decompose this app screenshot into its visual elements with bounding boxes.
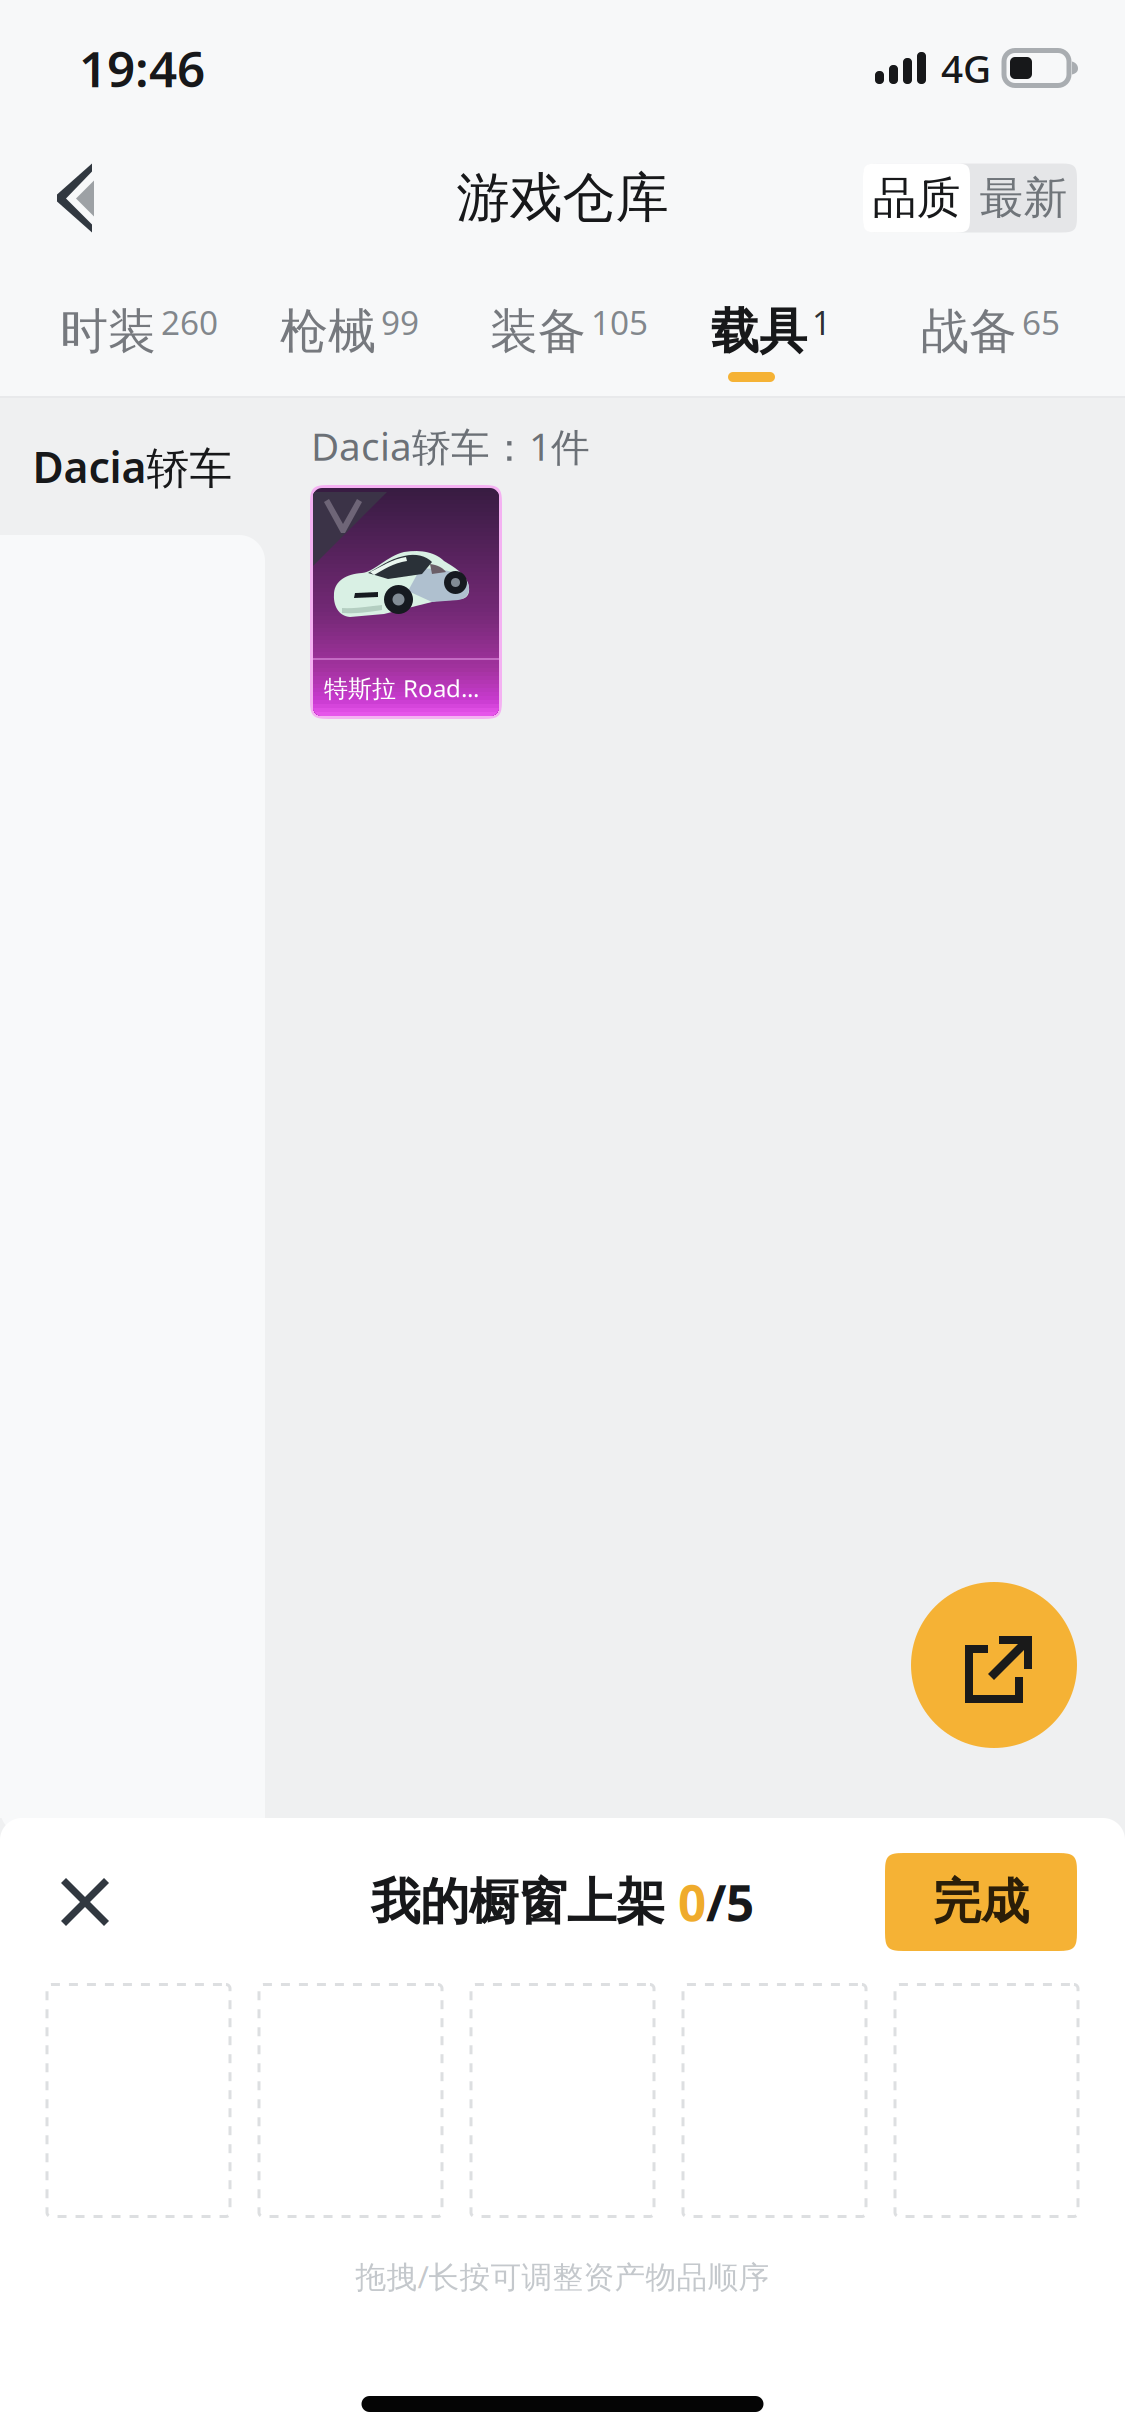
staticText: 品质 — [872, 171, 960, 225]
button[interactable]: 枪械 — [0, 302, 1125, 428]
staticText: 260 — [161, 300, 218, 344]
staticText: 4G — [941, 42, 991, 94]
button[interactable]: Share — [911, 1582, 1077, 1748]
staticText: /5 — [706, 1869, 754, 1935]
staticText: 1 — [812, 300, 831, 344]
staticText: 特斯拉 Road... — [324, 672, 479, 704]
staticText: 枪械 — [280, 302, 376, 361]
staticText: 拖拽/长按可调整资产物品顺序 — [355, 2256, 769, 2297]
staticText: 99 — [381, 300, 419, 344]
button[interactable]: Back — [17, 143, 135, 253]
button[interactable]: 最新 — [970, 163, 1077, 232]
button[interactable]: 时装 — [0, 302, 1125, 428]
staticText: 完成 — [933, 1872, 1029, 1931]
staticText: 我的橱窗上架 — [371, 1872, 665, 1932]
staticText: 游戏仓库 — [456, 165, 668, 231]
button[interactable]: 装备 — [0, 302, 1125, 428]
button[interactable]: 载具 — [0, 302, 1125, 428]
staticText: Dacia轿车：1件 — [311, 420, 590, 471]
staticText: 载具 — [711, 302, 807, 361]
staticText: 105 — [591, 300, 648, 344]
staticText: 19:46 — [79, 35, 205, 101]
staticText: 时装 — [60, 302, 156, 361]
staticText: 装备 — [490, 302, 586, 361]
button[interactable]: 特斯拉 Road... — [310, 485, 502, 719]
button[interactable]: 品质 — [863, 163, 970, 232]
button[interactable]: 战备 — [0, 302, 1125, 428]
staticText: 最新 — [979, 171, 1067, 225]
staticText: 0 — [665, 1869, 706, 1935]
staticText: 65 — [1022, 300, 1060, 344]
button[interactable]: Close — [31, 1848, 139, 1956]
button[interactable]: Dacia轿车 — [0, 398, 265, 535]
staticText: 战备 — [921, 302, 1017, 361]
staticText: Dacia轿车 — [32, 438, 232, 495]
button[interactable]: 完成 — [885, 1853, 1077, 1951]
